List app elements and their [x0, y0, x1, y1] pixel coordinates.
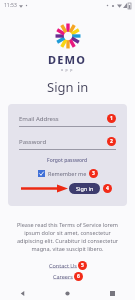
- button[interactable]: Forgot password: [47, 157, 88, 164]
- staticText: a p p: [61, 67, 74, 72]
- staticText: 11:53: [4, 2, 17, 9]
- staticText: Sign in: [47, 78, 89, 96]
- button[interactable]: Back: [0, 287, 45, 300]
- button[interactable]: Contact Us: [49, 262, 77, 269]
- button[interactable]: Sign in: [69, 183, 100, 194]
- staticText: 1: [110, 115, 113, 122]
- button[interactable]: Careers: [53, 273, 73, 280]
- staticText: Email Address: [19, 115, 107, 123]
- staticText: Remember me: [48, 170, 87, 177]
- staticText: 2: [110, 138, 113, 145]
- staticText: 3: [92, 170, 95, 177]
- staticText: Please read this Terms of Service lorem …: [14, 221, 121, 253]
- staticText: 5: [81, 262, 84, 269]
- button[interactable]: Remember me: [38, 170, 87, 177]
- staticText: 4: [106, 185, 109, 192]
- button[interactable]: Recent apps: [90, 287, 135, 300]
- staticText: 6: [77, 273, 80, 280]
- staticText: Sign in: [76, 185, 94, 192]
- staticText: Password: [19, 138, 107, 146]
- button[interactable]: Home: [45, 287, 90, 300]
- staticText: DEMO: [48, 52, 87, 67]
